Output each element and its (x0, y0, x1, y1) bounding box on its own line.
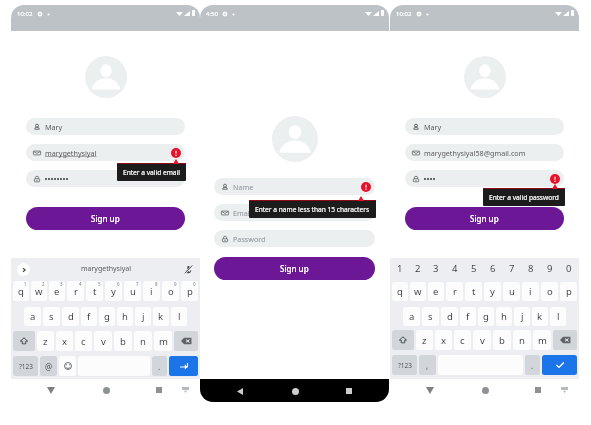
button[interactable]: y (484, 282, 501, 301)
button[interactable]: v (94, 331, 112, 351)
button[interactable]: v (473, 330, 491, 350)
button[interactable]: l (550, 307, 566, 326)
button[interactable]: m (154, 331, 172, 351)
button[interactable]: Name (214, 178, 375, 195)
button[interactable]: , (419, 355, 436, 375)
button[interactable]: Recents (530, 382, 546, 398)
button[interactable]: l (171, 307, 187, 326)
button[interactable]: j (135, 307, 151, 326)
button[interactable]: Shift (13, 331, 35, 351)
button[interactable]: u (124, 281, 141, 301)
button[interactable]: 4 (446, 261, 463, 276)
button[interactable]: marygethysiyal58@gmail.com (405, 144, 564, 161)
button[interactable]: b (493, 330, 511, 350)
button[interactable]: Back (422, 382, 438, 398)
button[interactable]: w (31, 281, 47, 301)
button[interactable]: Shift (392, 330, 414, 350)
button[interactable]: h (496, 307, 512, 326)
button[interactable]: Back (43, 382, 59, 398)
button[interactable]: Mary (405, 118, 564, 135)
button[interactable]: More suggestions (17, 263, 30, 276)
button[interactable]: e (428, 282, 444, 301)
button[interactable]: d (441, 307, 458, 326)
button[interactable]: o (541, 282, 558, 301)
button[interactable]: Backspace (553, 330, 577, 350)
button[interactable]: 3 (428, 261, 444, 276)
button[interactable]: Recents (151, 382, 167, 398)
button[interactable]: Home (477, 382, 493, 398)
button[interactable]: 2 (410, 261, 426, 276)
button[interactable]: s (422, 307, 439, 326)
button[interactable]: h (117, 307, 133, 326)
button[interactable]: 0 (560, 261, 577, 276)
button[interactable]: r (446, 282, 463, 301)
button[interactable]: e (49, 281, 65, 301)
button[interactable]: d (62, 307, 79, 326)
button[interactable]: r (67, 281, 84, 301)
button[interactable]: 8 (522, 261, 539, 276)
button[interactable]: 6 (484, 261, 501, 276)
button[interactable]: . (525, 355, 540, 375)
button[interactable]: o (162, 281, 179, 301)
button[interactable]: 5 (465, 261, 482, 276)
button[interactable]: Enter (542, 355, 577, 375)
button[interactable]: z (416, 330, 433, 350)
button[interactable] (405, 170, 564, 187)
button[interactable]: f (81, 307, 97, 326)
button[interactable]: @ (40, 356, 57, 376)
button[interactable]: i (522, 282, 539, 301)
button[interactable]: Sign up (405, 207, 564, 230)
button[interactable]: c (75, 331, 92, 351)
button[interactable]: n (513, 330, 531, 350)
button[interactable]: q (13, 281, 29, 301)
button[interactable]: q (392, 282, 408, 301)
button[interactable]: marygethysiyal (26, 144, 185, 161)
button[interactable]: ?123 (392, 355, 417, 375)
button[interactable]: Sign up (214, 257, 375, 280)
button[interactable]: Voice input off (183, 264, 193, 274)
button[interactable]: Emoji (59, 356, 76, 376)
button[interactable]: a (403, 307, 420, 326)
button[interactable]: 7 (503, 261, 520, 276)
button[interactable]: u (503, 282, 520, 301)
button[interactable]: t (86, 281, 103, 301)
button[interactable]: k (153, 307, 169, 326)
button[interactable]: z (37, 331, 54, 351)
button[interactable]: s (43, 307, 60, 326)
button[interactable]: Email address (214, 204, 375, 221)
button[interactable]: . (152, 356, 167, 376)
button[interactable]: m (533, 330, 551, 350)
button[interactable]: p (181, 281, 198, 301)
button[interactable] (26, 170, 185, 187)
button[interactable]: n (134, 331, 152, 351)
button[interactable]: Hide keyboard (178, 382, 193, 397)
button[interactable]: c (454, 330, 471, 350)
button[interactable]: Home (98, 382, 114, 398)
button[interactable]: x (56, 331, 73, 351)
button[interactable]: i (143, 281, 160, 301)
button[interactable]: Hide keyboard (557, 382, 572, 397)
button[interactable]: Enter (169, 356, 198, 376)
button[interactable]: Back (232, 383, 248, 399)
button[interactable]: Sign up (26, 207, 185, 230)
button[interactable]: 1 (392, 261, 408, 276)
button[interactable]: j (514, 307, 530, 326)
button[interactable]: g (478, 307, 494, 326)
button[interactable]: Mary (26, 118, 185, 135)
button[interactable]: t (465, 282, 482, 301)
button[interactable]: ?123 (13, 356, 38, 376)
button[interactable]: b (114, 331, 132, 351)
button[interactable]: p (560, 282, 577, 301)
button[interactable]: y (105, 281, 122, 301)
button[interactable]: a (24, 307, 41, 326)
button[interactable]: x (435, 330, 452, 350)
button[interactable]: g (99, 307, 115, 326)
button[interactable]: Recents (341, 383, 357, 399)
button[interactable]: 9 (541, 261, 558, 276)
button[interactable]: k (532, 307, 548, 326)
button[interactable]: Home (287, 383, 303, 399)
button[interactable]: w (410, 282, 426, 301)
button[interactable]: Backspace (174, 331, 198, 351)
